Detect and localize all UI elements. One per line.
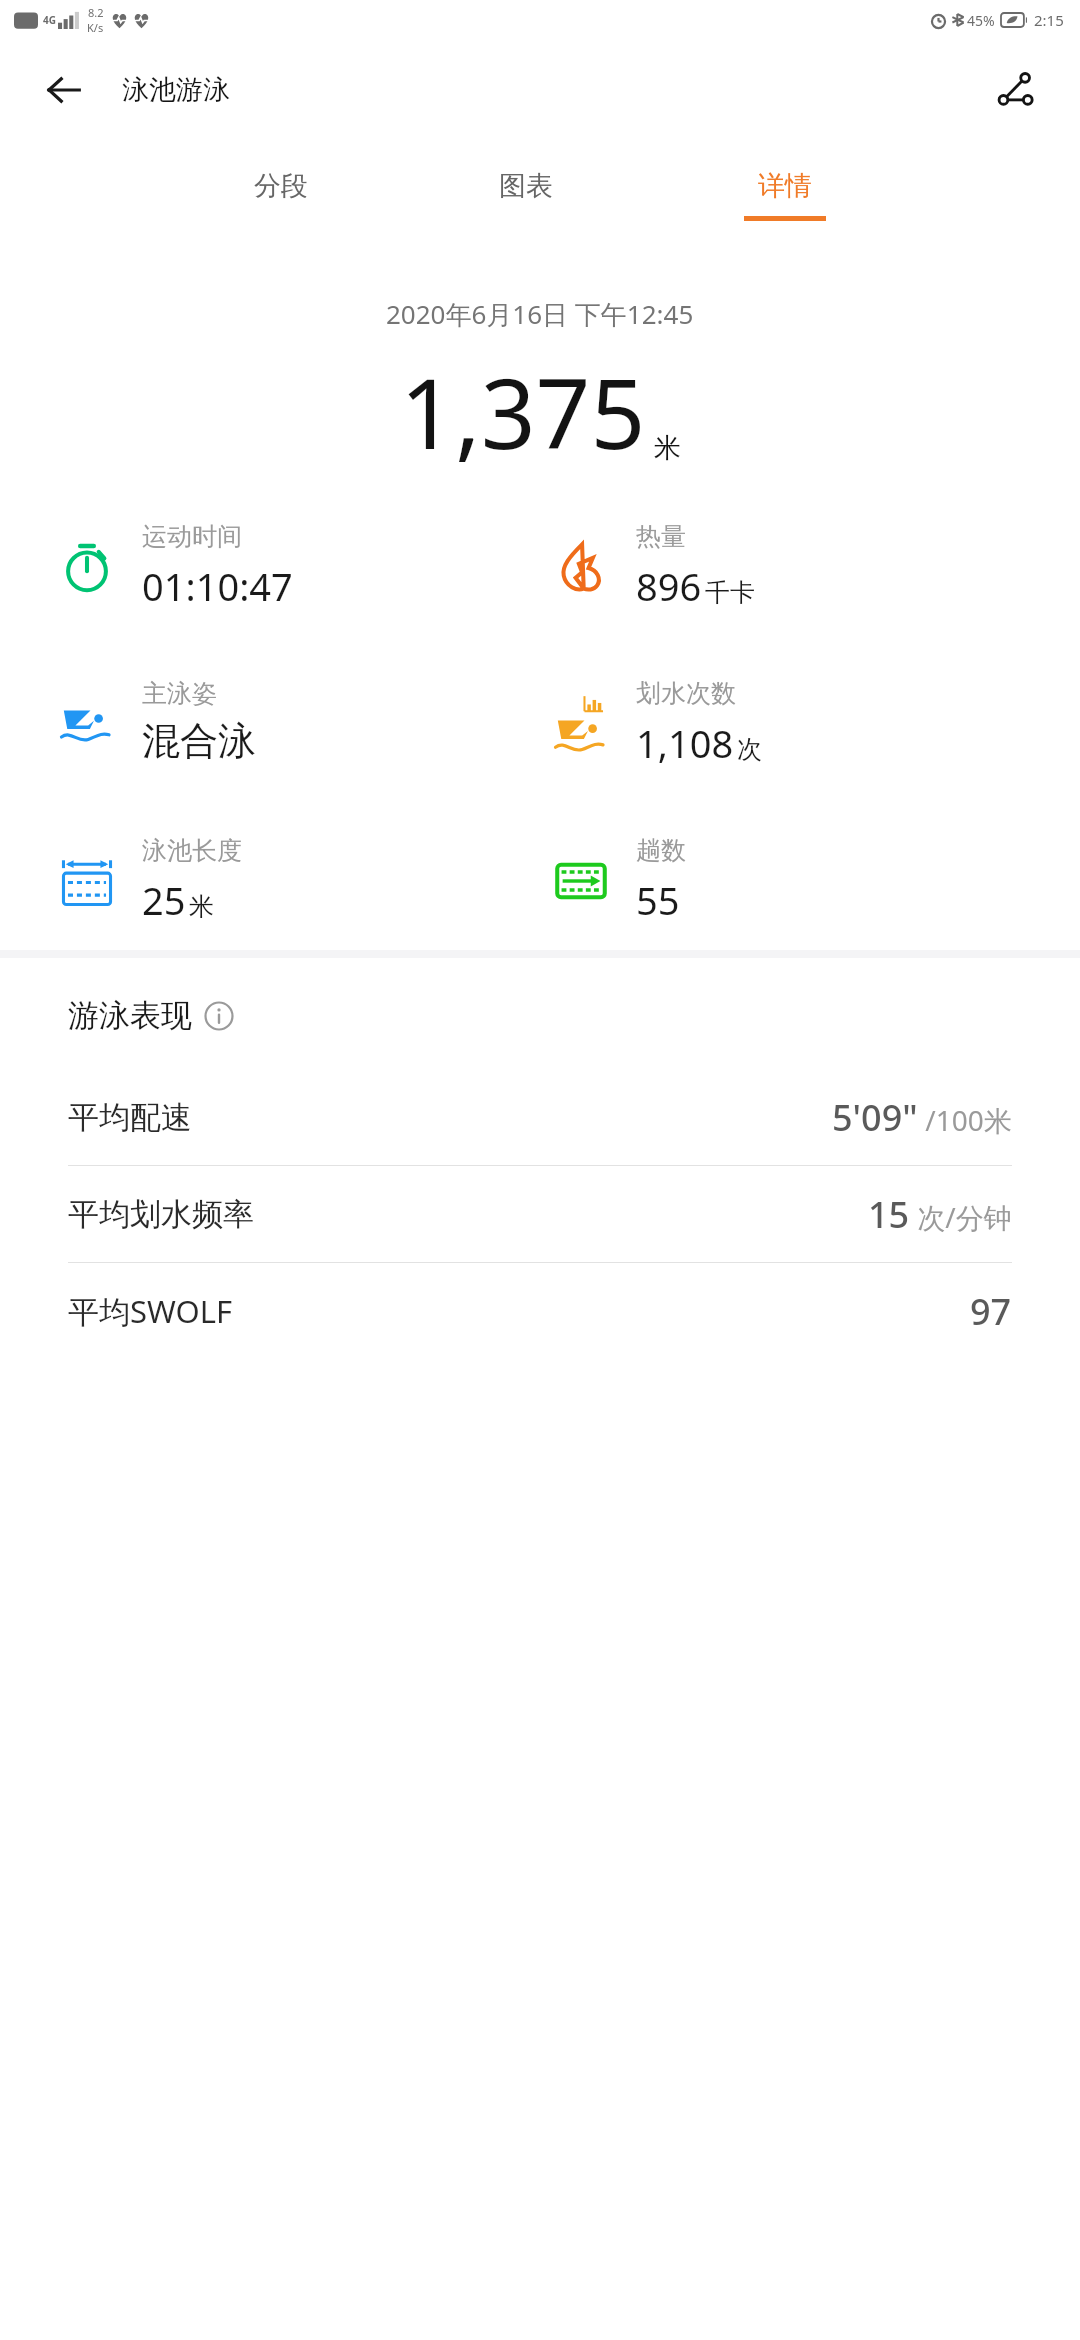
- staticText: 896: [636, 560, 702, 612]
- staticText: 25: [142, 874, 186, 926]
- button[interactable]: 图表: [485, 163, 567, 227]
- staticText: 97: [970, 1287, 1012, 1336]
- staticText: 平均划水频率: [68, 1195, 254, 1234]
- staticText: 平均SWOLF: [68, 1290, 233, 1332]
- staticText: 主泳姿: [142, 678, 217, 709]
- button[interactable]: 运动时间: [56, 521, 540, 612]
- button[interactable]: 主泳姿: [56, 678, 540, 765]
- button[interactable]: 游泳表现: [68, 996, 1080, 1035]
- button[interactable]: 泳池长度: [56, 835, 540, 926]
- staticText: 趟数: [636, 835, 686, 866]
- staticText: 15: [868, 1190, 910, 1239]
- staticText: 划水次数: [636, 678, 736, 709]
- staticText: 图表: [499, 169, 553, 203]
- button[interactable]: 划水次数: [550, 678, 1080, 769]
- staticText: 2020年6月16日 下午12:45: [386, 296, 694, 332]
- staticText: 次: [737, 734, 762, 765]
- staticText: K/s: [87, 20, 104, 35]
- button[interactable]: 平均SWOLF: [0, 1263, 1080, 1359]
- staticText: 1,108: [636, 717, 734, 769]
- button[interactable]: 分段: [240, 163, 322, 227]
- staticText: 分段: [254, 169, 308, 203]
- staticText: 混合泳: [142, 717, 256, 765]
- staticText: 5'09": [832, 1093, 918, 1142]
- button[interactable]: 详情: [730, 163, 840, 227]
- staticText: 平均配速: [68, 1098, 192, 1137]
- staticText: 热量: [636, 521, 686, 552]
- button[interactable]: 平均划水频率: [0, 1166, 1080, 1262]
- staticText: 8.2: [88, 5, 104, 20]
- staticText: 详情: [758, 169, 812, 203]
- staticText: 米: [189, 891, 214, 922]
- staticText: 次/分钟: [910, 1198, 1012, 1236]
- staticText: 游泳表现: [68, 996, 192, 1035]
- staticText: 泳池长度: [142, 835, 242, 866]
- button[interactable]: Back: [36, 62, 92, 118]
- staticText: 运动时间: [142, 521, 242, 552]
- staticText: 米: [654, 431, 681, 465]
- button[interactable]: 平均配速: [0, 1069, 1080, 1165]
- staticText: 4G: [43, 13, 56, 27]
- button[interactable]: Share: [986, 60, 1046, 120]
- staticText: 泳池游泳: [122, 73, 230, 107]
- button[interactable]: 热量: [550, 521, 1080, 612]
- staticText: 01:10:47: [142, 560, 293, 612]
- staticText: 45%: [967, 11, 995, 30]
- staticText: /100米: [918, 1101, 1012, 1139]
- staticText: 千卡: [705, 577, 755, 608]
- staticText: 1,375: [400, 346, 646, 477]
- staticText: 2:15: [1034, 10, 1064, 30]
- staticText: 55: [636, 874, 680, 926]
- button[interactable]: 趟数: [550, 835, 1080, 926]
